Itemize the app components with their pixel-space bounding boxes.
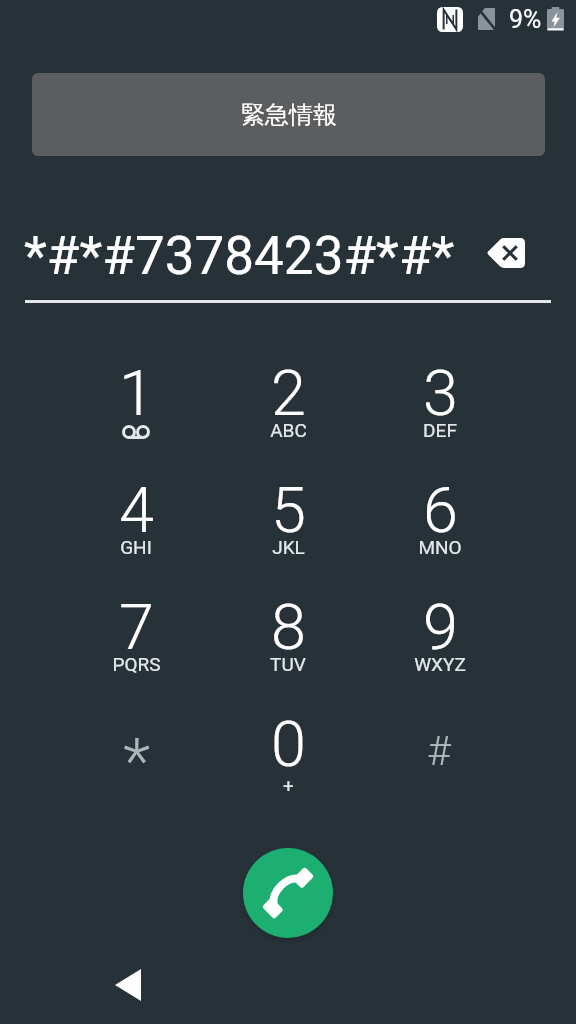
staticText: 緊急情報 [241,100,337,130]
staticText: GHI [120,536,152,558]
staticText: + [283,774,294,796]
staticText: *#*#7378423#*#* [24,225,455,287]
staticText: 4 [119,474,154,548]
button[interactable]: Back [106,963,150,1007]
staticText: 0 [271,708,306,782]
staticText: ABC [270,419,307,441]
staticText: PQRS [112,653,161,675]
button[interactable]: Pound [364,706,516,823]
button[interactable]: 6 [364,472,516,589]
button[interactable]: 8 [212,589,364,706]
staticText: 8 [271,591,306,665]
button[interactable]: Call [243,848,333,938]
button[interactable]: 3 [364,355,516,472]
button[interactable]: Star [60,706,212,823]
button[interactable]: 9 [364,589,516,706]
staticText: # [427,727,451,775]
button[interactable]: Backspace [475,223,535,283]
staticText: 7 [119,591,154,665]
staticText: 3 [423,357,458,431]
button[interactable]: 2 [212,355,364,472]
button[interactable]: 1 [60,355,212,472]
button[interactable]: 7 [60,589,212,706]
staticText: 1 [119,357,154,431]
staticText: DEF [423,419,457,441]
staticText: TUV [270,653,306,675]
staticText: 5 [271,474,306,548]
staticText: 6 [423,474,458,548]
staticText: WXYZ [414,653,466,675]
staticText: 2 [271,357,306,431]
button[interactable]: 4 [60,472,212,589]
staticText: 9% [509,5,542,34]
button[interactable]: 緊急情報 [32,73,545,156]
button[interactable]: 0 [212,706,364,823]
staticText: MNO [418,536,462,558]
staticText: JKL [272,536,305,558]
staticText: 9 [423,591,458,665]
staticText: * [123,725,150,799]
button[interactable]: 5 [212,472,364,589]
